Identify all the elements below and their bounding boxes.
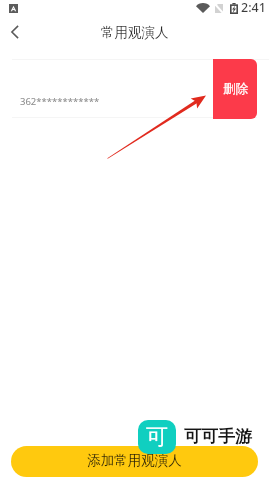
staticText: 362************ — [20, 95, 100, 108]
button[interactable]: 删除 — [213, 59, 257, 119]
staticText: 可 — [146, 423, 168, 451]
staticText: 删除 — [223, 81, 248, 97]
staticText: 添加常用观演人 — [87, 452, 182, 469]
button[interactable]: Back — [0, 16, 30, 50]
button[interactable]: 362************ — [0, 60, 269, 117]
staticText: 2:41 — [241, 0, 266, 15]
staticText: 常用观演人 — [101, 24, 169, 41]
staticText: 可可手游 — [184, 426, 252, 447]
button[interactable]: 添加常用观演人 — [11, 446, 258, 477]
